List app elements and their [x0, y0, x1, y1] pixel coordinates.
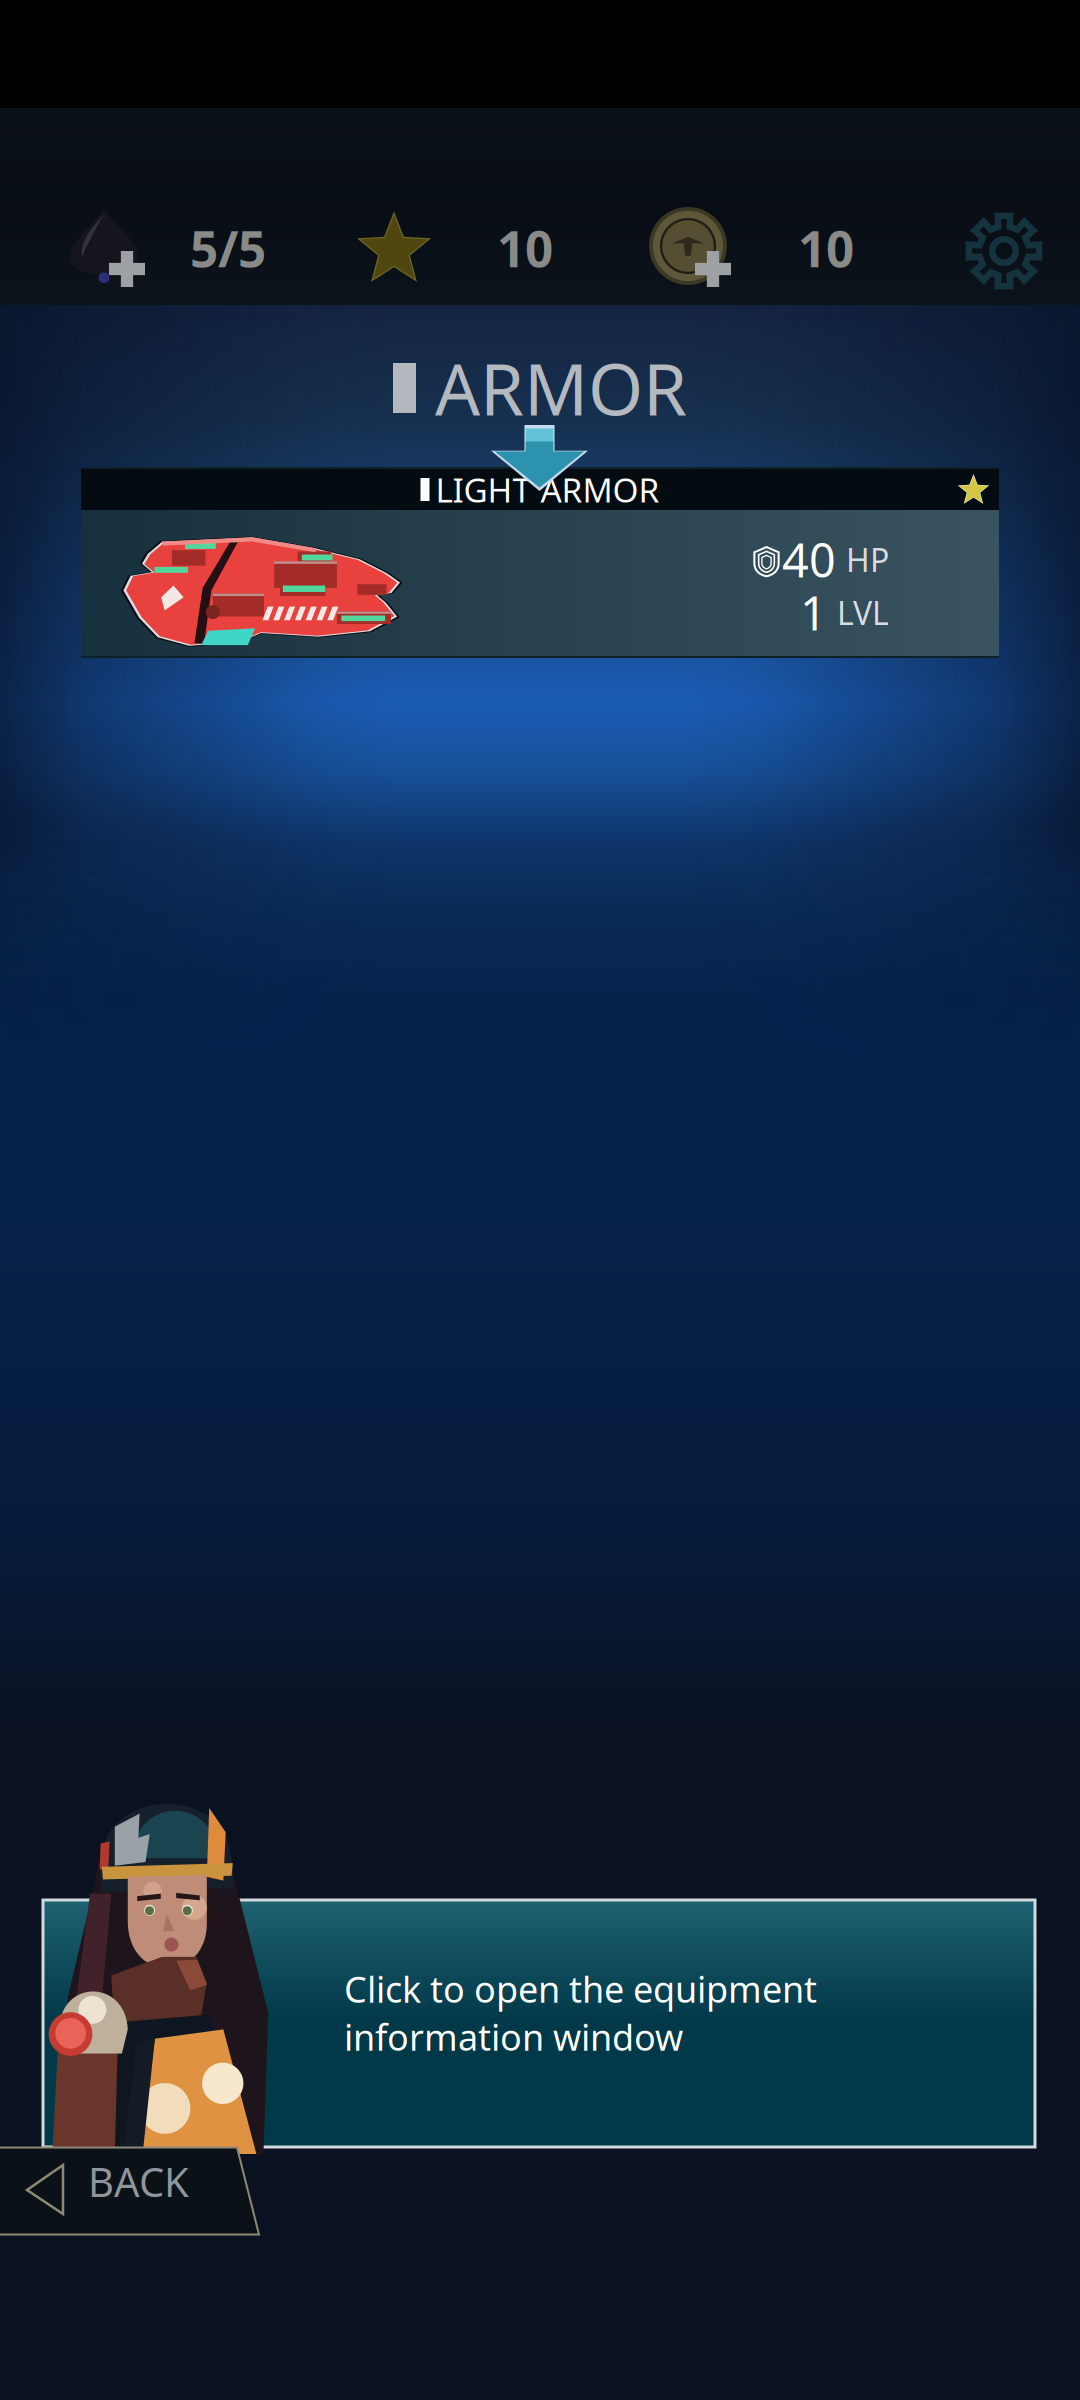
button[interactable]: LIGHT ARMOR	[81, 467, 999, 658]
staticText: 5/5	[190, 215, 266, 281]
button[interactable]: BACK	[0, 2146, 266, 2238]
staticText: 10	[798, 215, 854, 281]
staticText: LVL	[829, 591, 889, 634]
staticText: BACK	[88, 2155, 189, 2208]
button[interactable]: Settings	[939, 186, 1069, 316]
button[interactable]: Stars 10	[344, 193, 574, 303]
staticText: HP	[838, 538, 889, 581]
button[interactable]: Click to open the equipment	[43, 1900, 1035, 2147]
staticText: LIGHT ARMOR	[435, 467, 659, 512]
button[interactable]: Energy 5 of 5, add	[48, 193, 278, 303]
staticText: ARMOR	[435, 341, 687, 435]
staticText: 1	[800, 581, 827, 643]
button[interactable]: Coins 10, add	[640, 193, 870, 303]
staticText: 40	[782, 528, 836, 590]
staticText: Click to open the equipment	[344, 1965, 817, 2013]
staticText: information window	[344, 2013, 683, 2061]
staticText: 10	[497, 215, 553, 281]
